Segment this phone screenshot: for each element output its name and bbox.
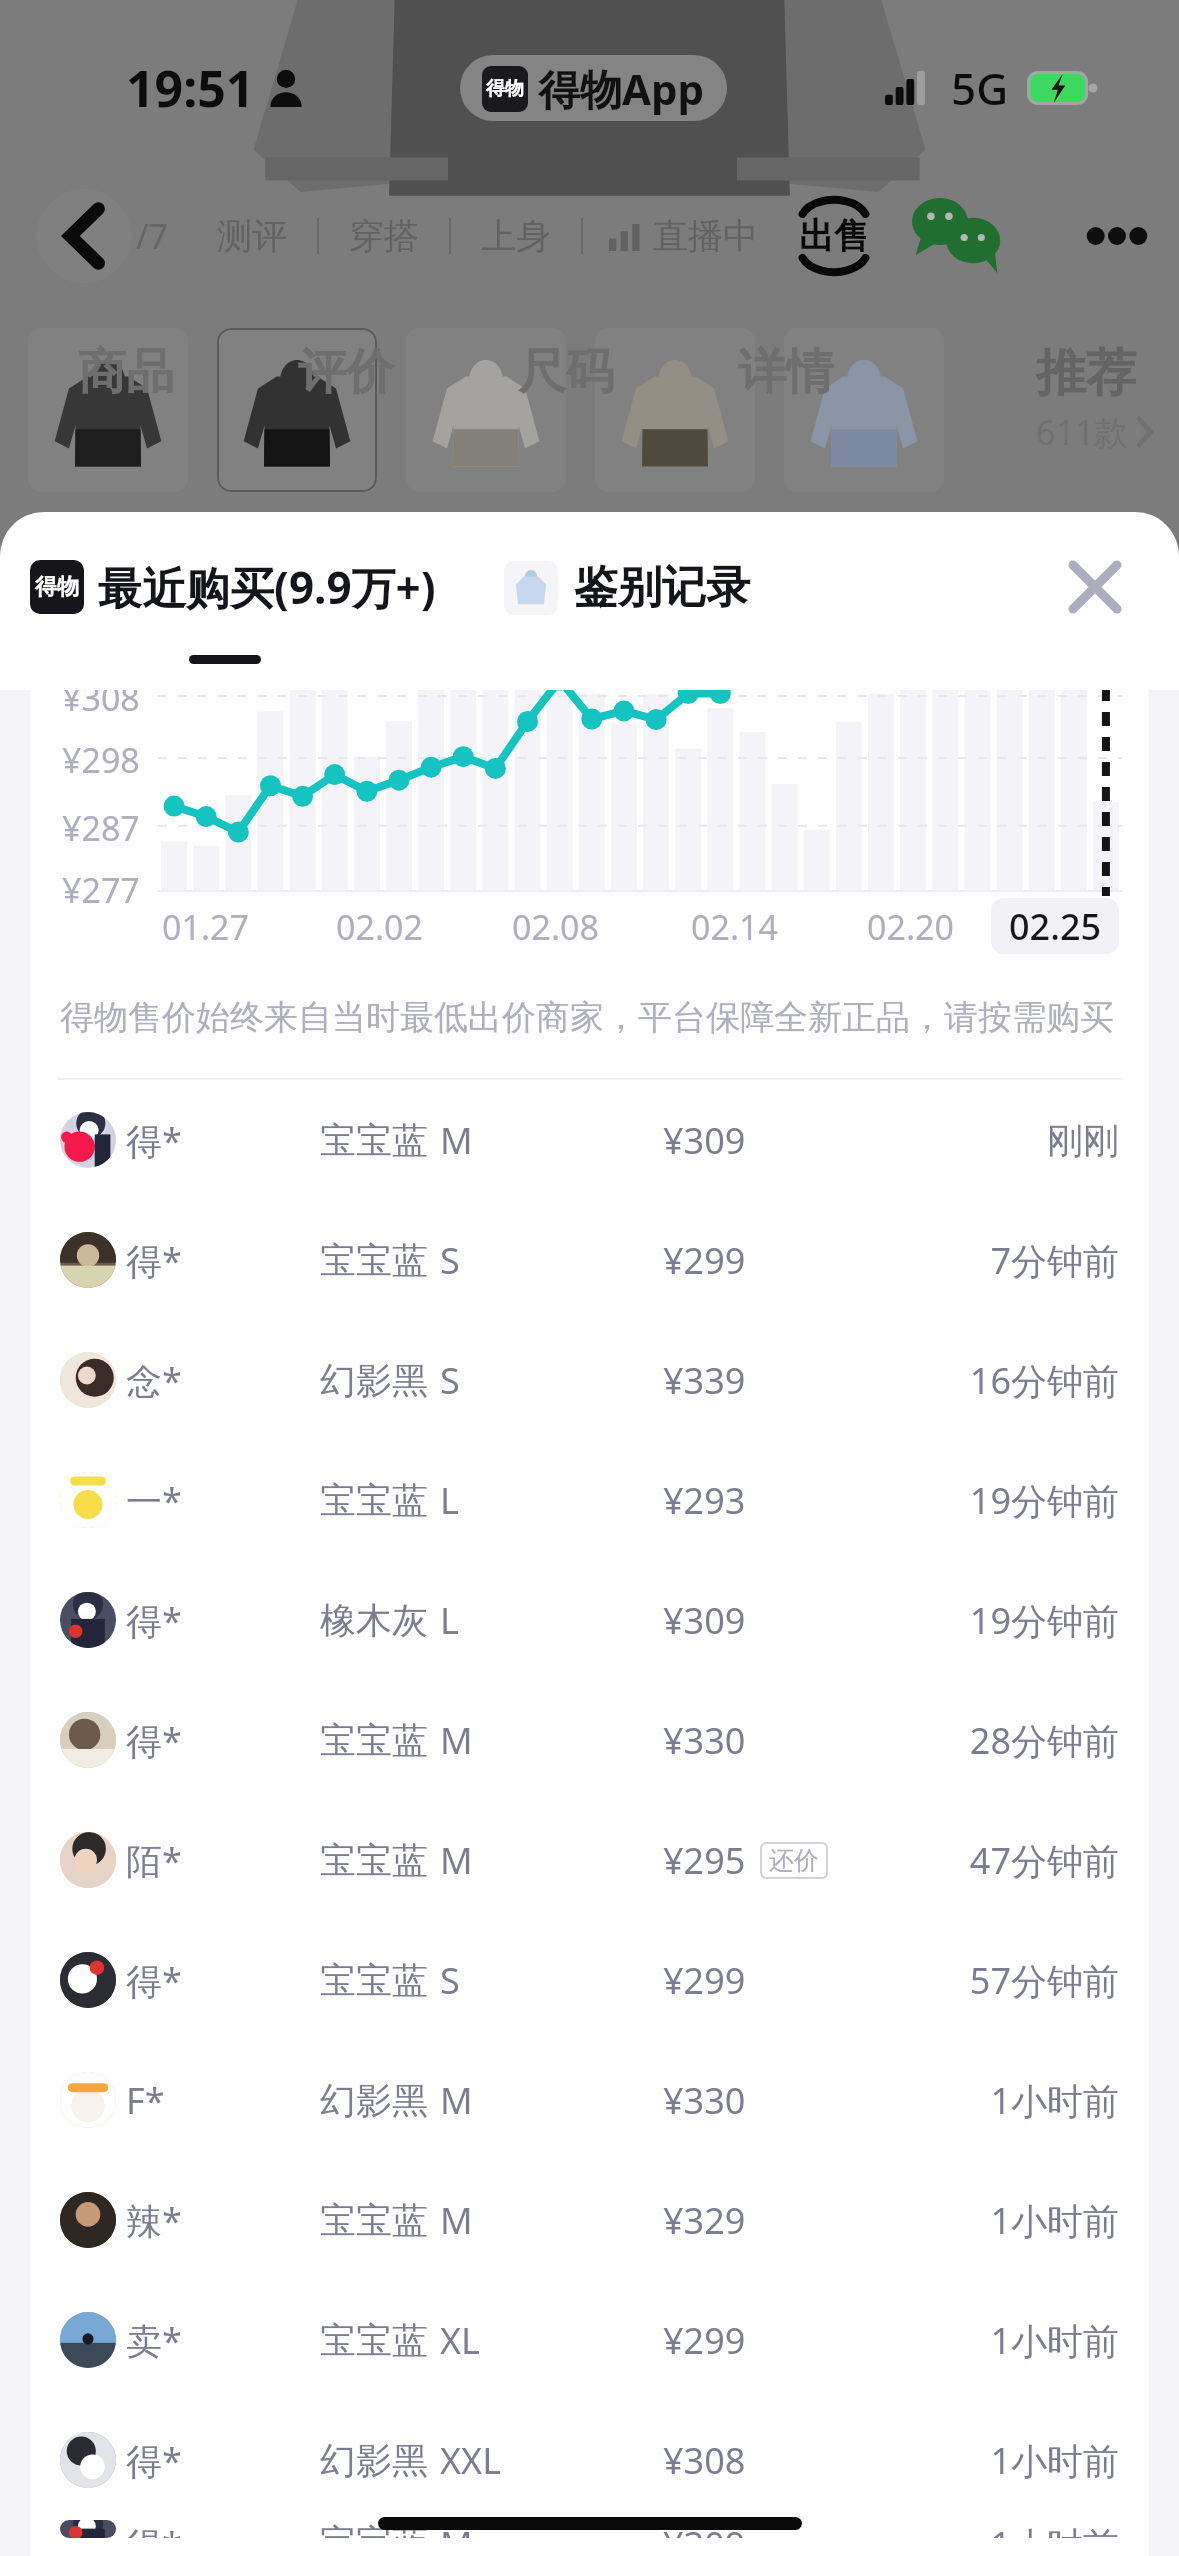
staticText: 5G [951, 58, 1009, 118]
staticText: 尺码 [518, 342, 614, 402]
staticText: ¥309 [663, 1596, 746, 1645]
staticText: XXL [440, 2436, 502, 2485]
other: WeChat [912, 198, 1002, 274]
staticText: 幻影黑 [320, 2438, 428, 2483]
button[interactable]: 出售 [796, 195, 872, 277]
button[interactable]: 得* [30, 1200, 1149, 1320]
staticText: 19分钟前 [969, 1476, 1119, 1525]
staticText: M [440, 1836, 473, 1885]
staticText: ¥287 [62, 805, 140, 851]
staticText: 陌* [126, 1836, 320, 1885]
staticText: 16分钟前 [969, 1356, 1119, 1405]
staticText: 1小时前 [990, 2436, 1119, 2485]
staticText: 02.02 [336, 904, 423, 950]
staticText: ¥309 [663, 2520, 746, 2538]
staticText: 宝宝蓝 [320, 2318, 428, 2363]
staticText: ¥339 [663, 1356, 746, 1405]
staticText: 鉴别记录 [574, 560, 750, 615]
staticText: 1小时前 [990, 2316, 1119, 2365]
staticText: ¥277 [62, 867, 140, 913]
staticText: 宝宝蓝 [320, 1718, 428, 1763]
staticText: 宝宝蓝 [320, 1478, 428, 1523]
button[interactable]: 辣* [30, 2160, 1149, 2280]
staticText: 宝宝蓝 [320, 1838, 428, 1883]
staticText: 1小时前 [990, 2196, 1119, 2245]
staticText: ¥298 [62, 737, 140, 783]
staticText: 02.08 [512, 904, 599, 950]
staticText: 28分钟前 [969, 1716, 1119, 1765]
staticText: 得* [126, 2520, 320, 2538]
staticText: 穿搭 [349, 214, 419, 258]
staticText: S [440, 1956, 460, 2005]
staticText: M [440, 2076, 473, 2125]
button[interactable]: 得* [30, 1920, 1149, 2040]
staticText: 宝宝蓝 [320, 1238, 428, 1283]
staticText: 02.25 [1009, 902, 1102, 951]
button[interactable]: 念* [30, 1320, 1149, 1440]
staticText: S [440, 1356, 460, 1405]
staticText: F* [126, 2076, 320, 2125]
staticText: M [440, 2520, 473, 2538]
staticText: 推荐 [1036, 342, 1136, 405]
staticText: 02.20 [867, 904, 954, 950]
staticText: M [440, 2196, 473, 2245]
button[interactable]: 得* [30, 2400, 1149, 2520]
staticText: 得物 [486, 77, 524, 101]
button[interactable]: 卖* [30, 2280, 1149, 2400]
staticText: 幻影黑 [320, 1358, 428, 1403]
other: More [1091, 225, 1143, 247]
staticText: L [440, 1596, 459, 1645]
staticText: 得物售价始终来自当时最低出价商家，平台保障全新正品，请按需购买 [60, 996, 1114, 1039]
staticText: 1小时前 [990, 2076, 1119, 2125]
button[interactable]: 得物 [30, 557, 436, 617]
staticText: 刚刚 [1047, 1118, 1119, 1163]
staticText: 辣* [126, 2196, 320, 2245]
staticText: 得* [126, 1116, 320, 1165]
button[interactable]: 一* [30, 1440, 1149, 1560]
staticText: L [440, 1476, 459, 1525]
staticText: 57分钟前 [969, 1956, 1119, 2005]
staticText: 宝宝蓝 [320, 2520, 428, 2538]
staticText: 7分钟前 [990, 1236, 1119, 1285]
staticText: 宝宝蓝 [320, 1118, 428, 1163]
staticText: 直播中 [653, 214, 758, 258]
staticText: 19:51 [126, 54, 255, 122]
staticText: 得* [126, 1236, 320, 1285]
staticText: 19分钟前 [969, 1596, 1119, 1645]
staticText: ¥299 [663, 1956, 746, 2005]
staticText: 宝宝蓝 [320, 1958, 428, 2003]
staticText: 还价 [769, 1845, 819, 1876]
staticText: M [440, 1716, 473, 1765]
staticText: M [440, 1116, 473, 1165]
staticText: 详情 [738, 342, 834, 402]
button[interactable]: 得* [30, 1080, 1149, 1200]
staticText: 得物 [35, 573, 79, 601]
staticText: 611款 [1036, 409, 1129, 455]
button[interactable]: 陌* [30, 1800, 1149, 1920]
staticText: 测评 [217, 214, 287, 258]
staticText: ¥299 [663, 2316, 746, 2365]
staticText: 得物App [538, 60, 705, 117]
staticText: ¥299 [663, 1236, 746, 1285]
staticText: 得* [126, 1596, 320, 1645]
button[interactable]: 得* [30, 2520, 1149, 2538]
staticText: 得* [126, 1716, 320, 1765]
staticText: 一* [126, 1476, 320, 1525]
button[interactable]: 得* [30, 1680, 1149, 1800]
staticText: 1小时前 [990, 2520, 1119, 2538]
button[interactable]: Close [1063, 555, 1127, 619]
button[interactable]: 鉴别记录 [504, 560, 750, 615]
staticText: 出售 [799, 214, 869, 258]
staticText: 念* [126, 1356, 320, 1405]
staticText: 47分钟前 [969, 1836, 1119, 1885]
button[interactable]: F* [30, 2040, 1149, 2160]
staticText: XL [440, 2316, 480, 2365]
button[interactable]: 得* [30, 1560, 1149, 1680]
staticText: 最近购买(9.9万+) [98, 557, 436, 617]
staticText: 橡木灰 [320, 1598, 428, 1643]
staticText: 上身 [481, 214, 551, 258]
staticText: ¥293 [663, 1476, 746, 1525]
staticText: 卖* [126, 2316, 320, 2365]
staticText: 01.27 [162, 904, 249, 950]
staticText: ¥329 [663, 2196, 746, 2245]
